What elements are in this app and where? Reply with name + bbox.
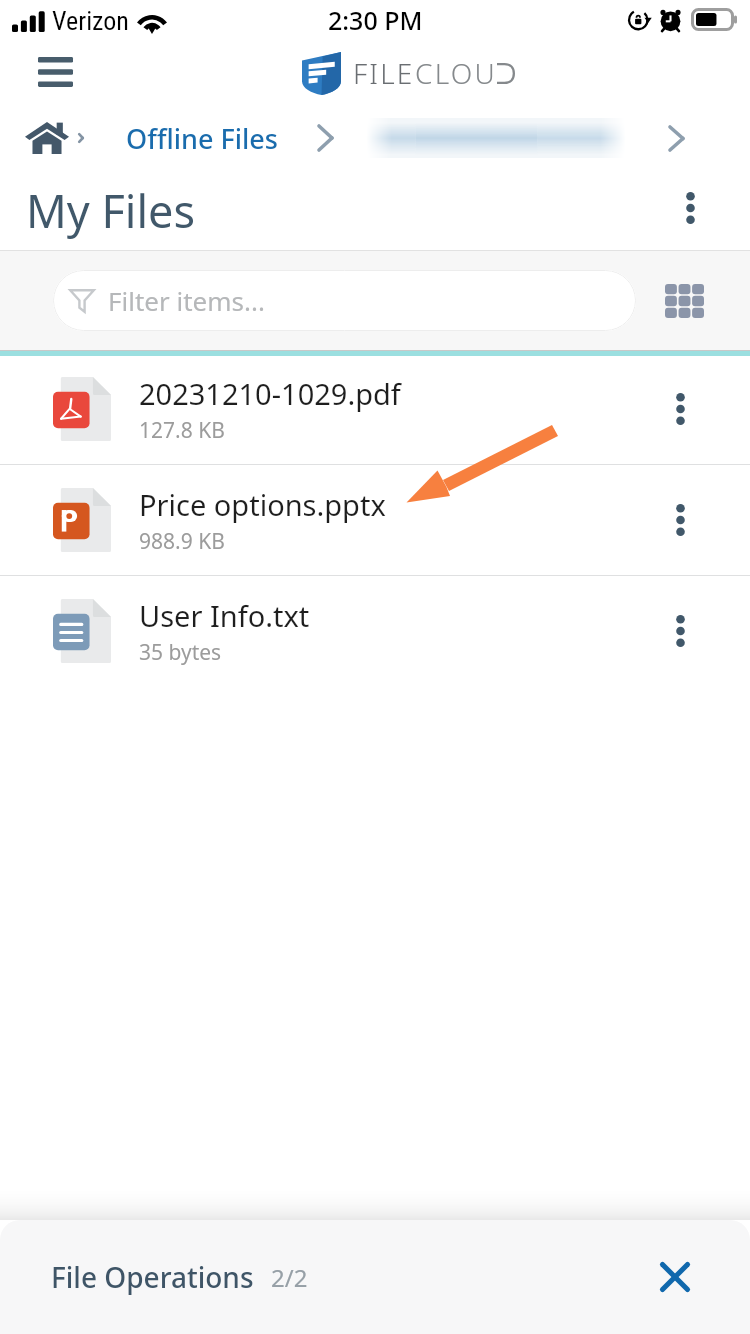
staticText: Filter items... <box>108 283 265 318</box>
staticText: Verizon <box>52 6 129 36</box>
staticText: FILE <box>353 54 415 92</box>
button[interactable]: Grid view <box>655 272 713 330</box>
button[interactable]: Price options.pptx <box>0 465 750 575</box>
button[interactable]: Menu <box>24 43 86 105</box>
staticText: 988.9 KB <box>139 527 225 556</box>
button[interactable]: Close <box>645 1247 705 1307</box>
button[interactable]: User Info.txt <box>0 576 750 686</box>
staticText: 2/2 <box>271 1261 308 1294</box>
staticText: 35 bytes <box>139 638 222 667</box>
staticText: 127.8 KB <box>139 416 225 445</box>
button[interactable]: More options <box>662 180 718 236</box>
button[interactable]: 20231210-1029.pdf <box>0 354 750 464</box>
staticText: CLOU <box>415 54 497 92</box>
button[interactable]: Item options <box>652 492 708 548</box>
button[interactable]: Filter items... <box>53 270 636 331</box>
button[interactable]: Item options <box>652 603 708 659</box>
staticText: My Files <box>26 180 195 241</box>
staticText: 2:30 PM <box>328 3 423 37</box>
button[interactable]: Offline Files <box>126 112 278 165</box>
staticText: User Info.txt <box>139 596 310 635</box>
button[interactable]: Item options <box>652 381 708 437</box>
staticText: 20231210-1029.pdf <box>139 374 401 413</box>
staticText: Offline Files <box>126 120 278 157</box>
button[interactable] <box>366 118 626 158</box>
staticText: Price options.pptx <box>139 485 386 524</box>
button[interactable]: Home <box>18 109 76 167</box>
staticText: File Operations <box>51 1258 254 1296</box>
